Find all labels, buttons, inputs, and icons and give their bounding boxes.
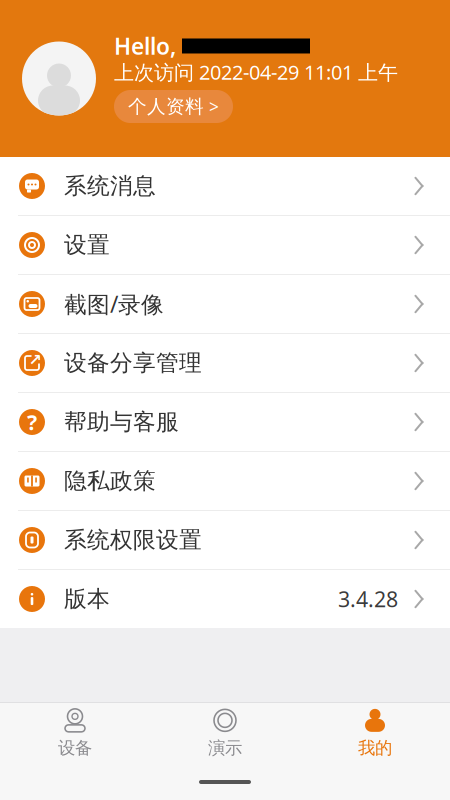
staticText: 系统消息 (64, 172, 156, 200)
button[interactable]: 演示 (150, 703, 300, 763)
staticText: 上次访问 2022-04-29 11:01 上午 (114, 59, 398, 85)
staticText: ? (27, 408, 37, 436)
button[interactable]: ↗ (0, 334, 450, 392)
button[interactable]: 系统权限设置 (0, 511, 450, 569)
staticText: 设备 (58, 737, 92, 759)
staticText: 隐私政策 (64, 467, 156, 495)
button[interactable]: 我的 (300, 703, 450, 763)
staticText: 我的 (358, 737, 392, 759)
button[interactable]: 版本 (0, 570, 450, 628)
staticText: Hello, (114, 31, 176, 61)
button[interactable]: 设备 (0, 703, 150, 763)
staticText: 个人资料 (128, 95, 204, 118)
staticText: 设置 (64, 231, 110, 259)
staticText: 演示 (208, 737, 242, 759)
staticText: 版本 (64, 585, 110, 613)
staticText: 设备分享管理 (64, 349, 202, 377)
button[interactable]: 设置 (0, 216, 450, 274)
button[interactable]: 系统消息 (0, 157, 450, 215)
button[interactable]: 个人资料 (114, 90, 233, 123)
staticText: 帮助与客服 (64, 408, 179, 436)
staticText: ↗ (28, 351, 41, 369)
button[interactable]: 截图/录像 (0, 275, 450, 333)
staticText: > (209, 95, 219, 118)
button[interactable]: ? (0, 393, 450, 451)
button[interactable]: 隐私政策 (0, 452, 450, 510)
staticText: 系统权限设置 (64, 526, 202, 554)
staticText: 3.4.28 (338, 585, 398, 613)
staticText: 截图/录像 (64, 289, 164, 319)
